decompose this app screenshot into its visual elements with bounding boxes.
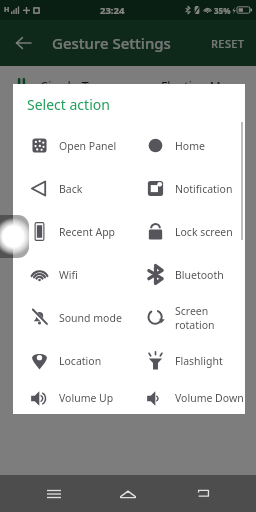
button[interactable]: Home: [129, 124, 245, 167]
staticText: Volume Down: [175, 391, 244, 405]
button[interactable]: Back: [13, 167, 129, 210]
button[interactable]: Volume Up: [13, 382, 129, 414]
staticText: Screen rotation: [175, 304, 245, 332]
staticText: Notification: [175, 182, 233, 196]
button[interactable]: Open Panel: [13, 124, 129, 167]
staticText: Single Tap: [41, 77, 104, 95]
button[interactable]: Notification: [129, 167, 245, 210]
staticText: Wifi: [59, 268, 78, 282]
staticText: Open Panel: [59, 139, 117, 153]
button[interactable]: Flashlight: [129, 339, 245, 382]
button[interactable]: Volume Down: [129, 382, 245, 414]
staticText: Select action: [27, 95, 110, 114]
button[interactable]: Recent App: [13, 210, 129, 253]
staticText: Location: [59, 354, 102, 368]
button[interactable]: Screen rotation: [129, 296, 245, 339]
button[interactable]: Floating menu bubble: [0, 215, 29, 258]
staticText: Back: [59, 182, 83, 196]
button[interactable]: RESET: [206, 31, 250, 56]
staticText: 35%: [214, 5, 231, 16]
staticText: RESET: [211, 36, 245, 51]
staticText: Recent App: [59, 225, 116, 239]
button[interactable]: Sound mode: [13, 296, 129, 339]
staticText: H: [4, 5, 10, 15]
button[interactable]: Wifi: [13, 253, 129, 296]
button[interactable]: Back: [182, 475, 224, 512]
button[interactable]: Back: [7, 27, 39, 59]
staticText: Sound mode: [59, 311, 122, 325]
staticText: Gesture Settings: [52, 33, 171, 53]
button[interactable]: Bluetooth: [129, 253, 245, 296]
staticText: 23:24: [100, 4, 125, 17]
button[interactable]: Location: [13, 339, 129, 382]
staticText: Bluetooth: [175, 268, 224, 282]
staticText: Volume Up: [59, 391, 114, 405]
button[interactable]: Home: [107, 475, 149, 512]
button[interactable]: Lock screen: [129, 210, 245, 253]
staticText: Home: [175, 139, 205, 153]
button[interactable]: Menu: [33, 475, 75, 512]
staticText: Flashlight: [175, 354, 223, 368]
staticText: Lock screen: [175, 225, 233, 239]
staticText: Floating Menu: [161, 78, 243, 94]
